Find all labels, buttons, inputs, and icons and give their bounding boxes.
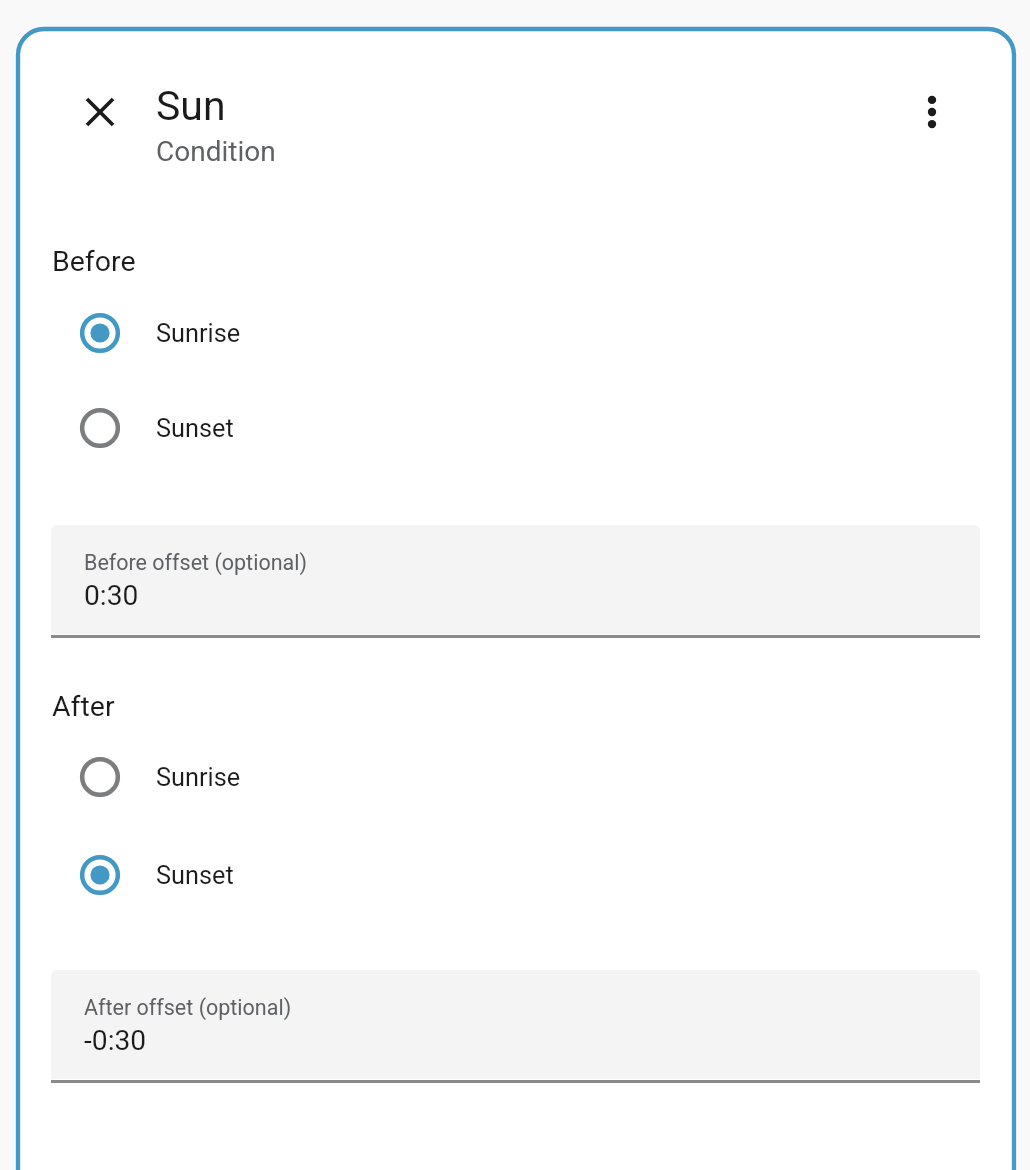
- staticText: After: [52, 690, 115, 723]
- staticText: Sun: [156, 82, 226, 130]
- button[interactable]: Sunrise: [58, 291, 478, 375]
- staticText: After offset (optional): [84, 995, 292, 1020]
- button[interactable]: Sunset: [58, 386, 478, 470]
- staticText: Before: [52, 245, 136, 278]
- staticText: Sunset: [156, 414, 234, 444]
- staticText: Condition: [156, 135, 276, 168]
- staticText: Before offset (optional): [84, 550, 307, 575]
- staticText: Sunrise: [156, 763, 241, 793]
- staticText: Sunrise: [156, 319, 241, 349]
- staticText: -0:30: [84, 1024, 147, 1057]
- button[interactable]: More options: [896, 76, 968, 148]
- staticText: Sunset: [156, 861, 234, 891]
- button[interactable]: Close: [64, 76, 136, 148]
- button[interactable]: Sunrise: [58, 735, 478, 819]
- staticText: 0:30: [84, 579, 139, 612]
- button[interactable]: After offset (optional): [51, 970, 980, 1083]
- button[interactable]: Sunset: [58, 833, 478, 917]
- button[interactable]: Before offset (optional): [51, 525, 980, 638]
